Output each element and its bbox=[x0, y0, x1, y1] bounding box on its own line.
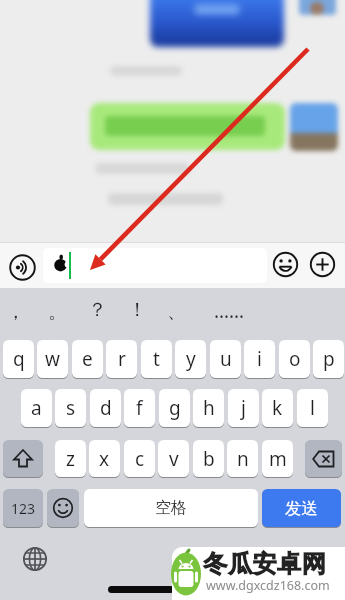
staticText: a bbox=[31, 395, 42, 421]
staticText: www.dgxcdz168.com bbox=[206, 577, 330, 594]
button[interactable]: r bbox=[106, 340, 137, 378]
staticText: u bbox=[220, 346, 232, 372]
staticText: g bbox=[169, 395, 181, 421]
button[interactable]: b bbox=[193, 440, 224, 477]
button[interactable]: v bbox=[158, 440, 189, 477]
staticText: d bbox=[100, 395, 112, 421]
button[interactable]: y bbox=[175, 340, 206, 378]
staticText: x bbox=[99, 446, 110, 472]
button[interactable] bbox=[310, 252, 335, 277]
button[interactable]: p bbox=[313, 340, 344, 378]
button[interactable] bbox=[305, 440, 342, 477]
staticText: k bbox=[272, 395, 283, 421]
staticText: 空格 bbox=[155, 498, 187, 518]
button[interactable] bbox=[3, 440, 43, 477]
button[interactable]: h bbox=[193, 389, 224, 427]
staticText: h bbox=[203, 395, 215, 421]
button[interactable] bbox=[273, 252, 298, 277]
button[interactable]: ， bbox=[6, 300, 25, 324]
staticText: r bbox=[118, 346, 126, 372]
staticText: 冬瓜安卓网 bbox=[203, 549, 326, 579]
staticText: 发送 bbox=[285, 498, 318, 519]
staticText: t bbox=[153, 346, 160, 372]
button[interactable]: u bbox=[210, 340, 241, 378]
button[interactable]: z bbox=[55, 440, 86, 477]
staticText: f bbox=[136, 395, 143, 421]
button[interactable] bbox=[43, 248, 267, 283]
button[interactable]: ！ bbox=[128, 298, 147, 322]
staticText: e bbox=[82, 346, 93, 372]
staticText: i bbox=[257, 346, 262, 372]
button[interactable]: i bbox=[244, 340, 275, 378]
button[interactable]: 123 bbox=[3, 489, 43, 527]
button[interactable] bbox=[9, 254, 36, 281]
button[interactable]: 、 bbox=[167, 300, 186, 324]
staticText: z bbox=[66, 446, 75, 472]
staticText: m bbox=[269, 446, 287, 472]
staticText: 123 bbox=[11, 499, 36, 518]
button[interactable]: w bbox=[37, 340, 68, 378]
button[interactable]: x bbox=[89, 440, 120, 477]
staticText: n bbox=[237, 446, 249, 472]
button[interactable]: 空格 bbox=[84, 489, 258, 527]
button[interactable]: j bbox=[228, 389, 259, 427]
button[interactable]: q bbox=[3, 340, 34, 378]
staticText: y bbox=[186, 346, 196, 372]
button[interactable]: t bbox=[141, 340, 172, 378]
staticText: o bbox=[289, 346, 301, 372]
button[interactable]: d bbox=[90, 389, 121, 427]
staticText: l bbox=[310, 395, 315, 421]
staticText: w bbox=[45, 346, 60, 372]
staticText: p bbox=[323, 346, 335, 372]
button[interactable]: e bbox=[72, 340, 103, 378]
button[interactable]: s bbox=[55, 389, 86, 427]
staticText: q bbox=[13, 346, 25, 372]
staticText: j bbox=[241, 395, 246, 421]
button[interactable]: …… bbox=[214, 298, 245, 324]
staticText: v bbox=[169, 446, 179, 472]
button[interactable]: ？ bbox=[88, 298, 107, 322]
button[interactable]: c bbox=[124, 440, 155, 477]
button[interactable] bbox=[47, 489, 79, 527]
staticText: b bbox=[203, 446, 215, 472]
button[interactable]: o bbox=[279, 340, 310, 378]
button[interactable]: g bbox=[159, 389, 190, 427]
button[interactable]: m bbox=[262, 440, 293, 477]
staticText: c bbox=[135, 446, 145, 472]
button[interactable]: l bbox=[297, 389, 328, 427]
staticText: s bbox=[66, 395, 76, 421]
button[interactable]: 发送 bbox=[262, 489, 341, 527]
button[interactable]: a bbox=[21, 389, 52, 427]
button[interactable]: f bbox=[124, 389, 155, 427]
button[interactable]: n bbox=[227, 440, 258, 477]
button[interactable]: k bbox=[262, 389, 293, 427]
button[interactable] bbox=[22, 546, 48, 572]
button[interactable]: 。 bbox=[48, 300, 67, 324]
